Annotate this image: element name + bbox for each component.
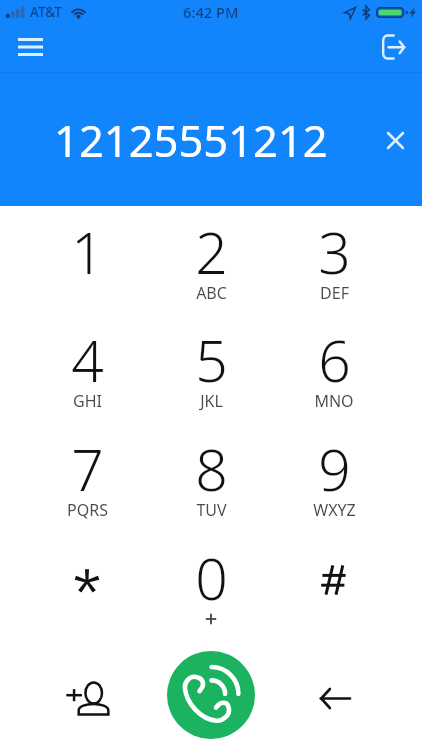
staticText: 5	[195, 321, 228, 399]
button[interactable]: 0	[155, 539, 267, 639]
staticText: 3	[318, 213, 351, 291]
staticText: 9	[318, 430, 351, 508]
staticText: 1	[71, 213, 104, 291]
button[interactable]: 3	[278, 213, 390, 313]
button[interactable]: Log out	[371, 24, 417, 70]
button[interactable]: 6	[278, 321, 390, 421]
staticText: 6:42 PM	[183, 2, 239, 22]
button[interactable]: 7	[31, 430, 143, 530]
button[interactable]: 8	[155, 430, 267, 530]
staticText: WXYZ	[313, 499, 356, 521]
button[interactable]	[31, 539, 143, 639]
button[interactable]: Backspace	[295, 668, 375, 728]
staticText: AT&T	[30, 3, 62, 21]
staticText: ABC	[196, 282, 227, 304]
button[interactable]: Clear	[373, 118, 417, 162]
staticText: 0	[195, 539, 228, 617]
button[interactable]: 5	[155, 321, 267, 421]
staticText: 6	[318, 321, 351, 399]
staticText: 8	[195, 430, 228, 508]
staticText: 2	[195, 213, 228, 291]
staticText: GHI	[73, 390, 102, 412]
button[interactable]: 2	[155, 213, 267, 313]
staticText: 4	[71, 321, 104, 399]
button[interactable]: Add contact	[47, 668, 127, 728]
staticText: PQRS	[67, 499, 108, 521]
staticText: DEF	[320, 282, 349, 304]
button[interactable]: 1	[31, 213, 143, 313]
button[interactable]: 9	[278, 430, 390, 530]
button[interactable]: 4	[31, 321, 143, 421]
button[interactable]	[278, 539, 390, 639]
staticText: JKL	[200, 390, 223, 412]
button[interactable]: Call	[167, 651, 255, 739]
button[interactable]: Menu	[7, 24, 53, 70]
staticText: TUV	[196, 499, 227, 521]
staticText: 7	[71, 430, 104, 508]
staticText: 12125551212	[54, 110, 328, 169]
staticText: MNO	[314, 390, 354, 412]
